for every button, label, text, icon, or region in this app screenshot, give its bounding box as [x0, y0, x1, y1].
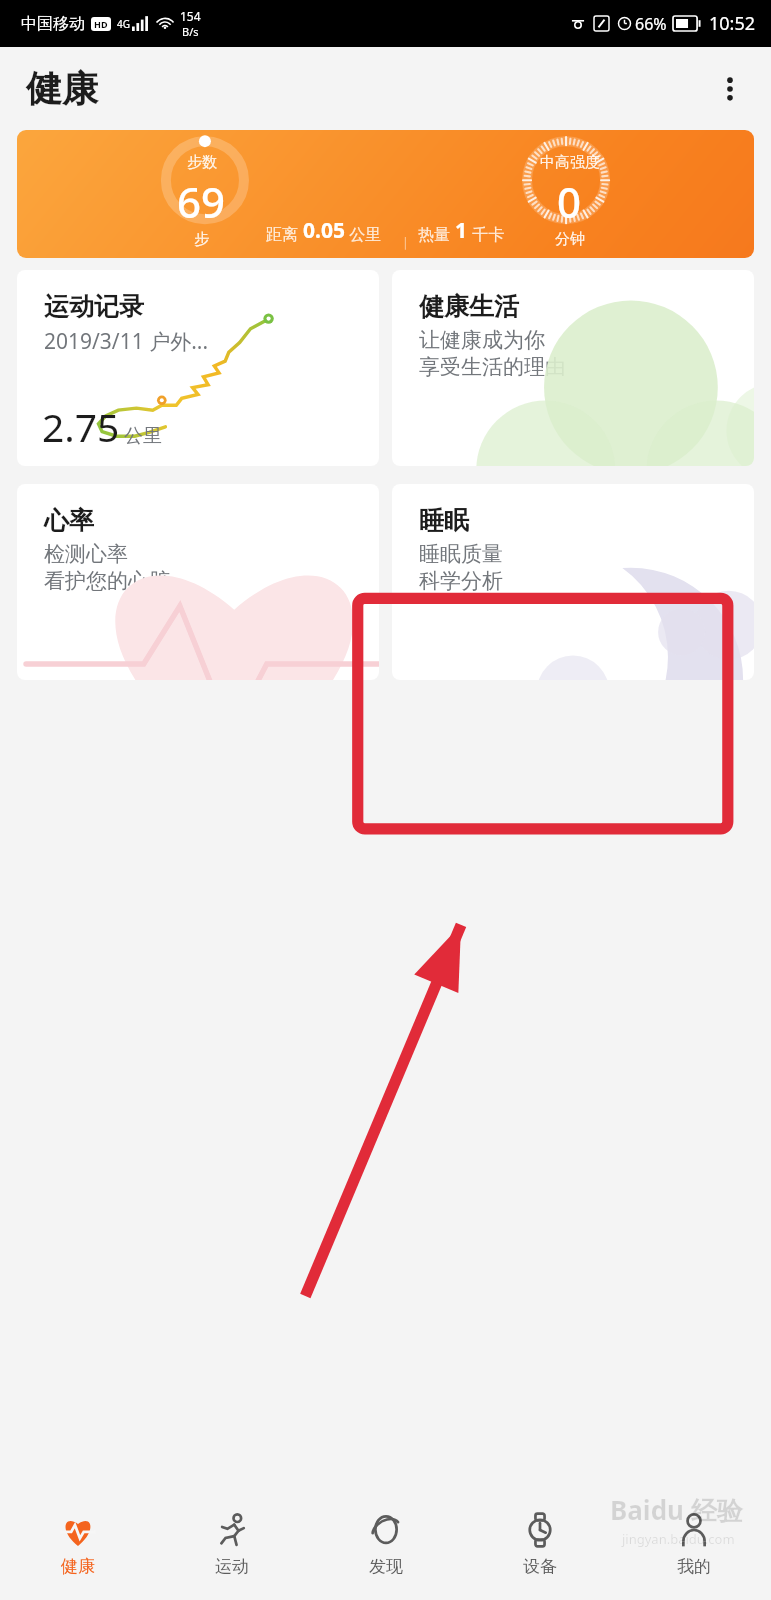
staticText: 看护您的心脏	[44, 568, 170, 594]
staticText: 步	[194, 230, 209, 249]
staticText: 睡眠质量	[419, 541, 503, 567]
staticText: 1	[455, 216, 468, 245]
staticText: 我的	[677, 1556, 711, 1577]
staticText: 154	[180, 8, 201, 24]
staticText: 健康	[26, 66, 98, 111]
button[interactable]: 我的	[617, 1488, 771, 1600]
staticText: 健康生活	[419, 291, 519, 322]
staticText: 睡眠	[419, 505, 469, 536]
button[interactable]: 心率	[17, 484, 379, 680]
staticText: 公里	[345, 223, 382, 245]
staticText: 2019/3/11 户外...	[44, 327, 209, 356]
staticText: 距离	[266, 223, 303, 245]
button[interactable]: 运动	[155, 1488, 309, 1600]
staticText: 4G	[117, 17, 130, 31]
staticText: 让健康成为你	[419, 327, 545, 353]
staticText: 分钟	[555, 230, 585, 249]
staticText: 运动记录	[44, 291, 144, 322]
staticText: Baidu 经验	[610, 1492, 743, 1528]
staticText: 心率	[44, 505, 94, 536]
staticText: 中国移动	[21, 14, 85, 34]
staticText: 69	[177, 173, 226, 230]
staticText: 健康	[61, 1556, 95, 1577]
staticText: 享受生活的理由	[419, 354, 566, 380]
staticText: 0.05	[303, 216, 345, 245]
button[interactable]: More options	[707, 66, 753, 112]
staticText: 10:52	[709, 11, 756, 36]
button[interactable]: 睡眠	[392, 484, 754, 680]
staticText: 66%	[635, 13, 667, 35]
staticText: jingyan.baidu.com	[622, 1530, 735, 1548]
button[interactable]: 步数	[17, 130, 754, 258]
staticText: 0	[557, 173, 582, 230]
button[interactable]: 设备	[463, 1488, 617, 1600]
staticText: 公里	[124, 424, 162, 448]
staticText: 中高强度	[540, 153, 600, 172]
staticText: 千卡	[468, 223, 505, 245]
button[interactable]: 发现	[309, 1488, 463, 1600]
staticText: 科学分析	[419, 568, 503, 594]
staticText: HD	[94, 18, 108, 30]
staticText: 检测心率	[44, 541, 128, 567]
button[interactable]: 健康生活	[392, 270, 754, 466]
staticText: 热量	[418, 223, 455, 245]
staticText: 2.75	[42, 400, 120, 453]
staticText: 发现	[369, 1556, 403, 1577]
staticText: 运动	[215, 1556, 249, 1577]
staticText: 步数	[187, 153, 217, 172]
staticText: B/s	[182, 24, 199, 39]
staticText: 设备	[523, 1556, 557, 1577]
button[interactable]: 健康	[0, 1488, 155, 1600]
button[interactable]: 运动记录	[17, 270, 379, 466]
